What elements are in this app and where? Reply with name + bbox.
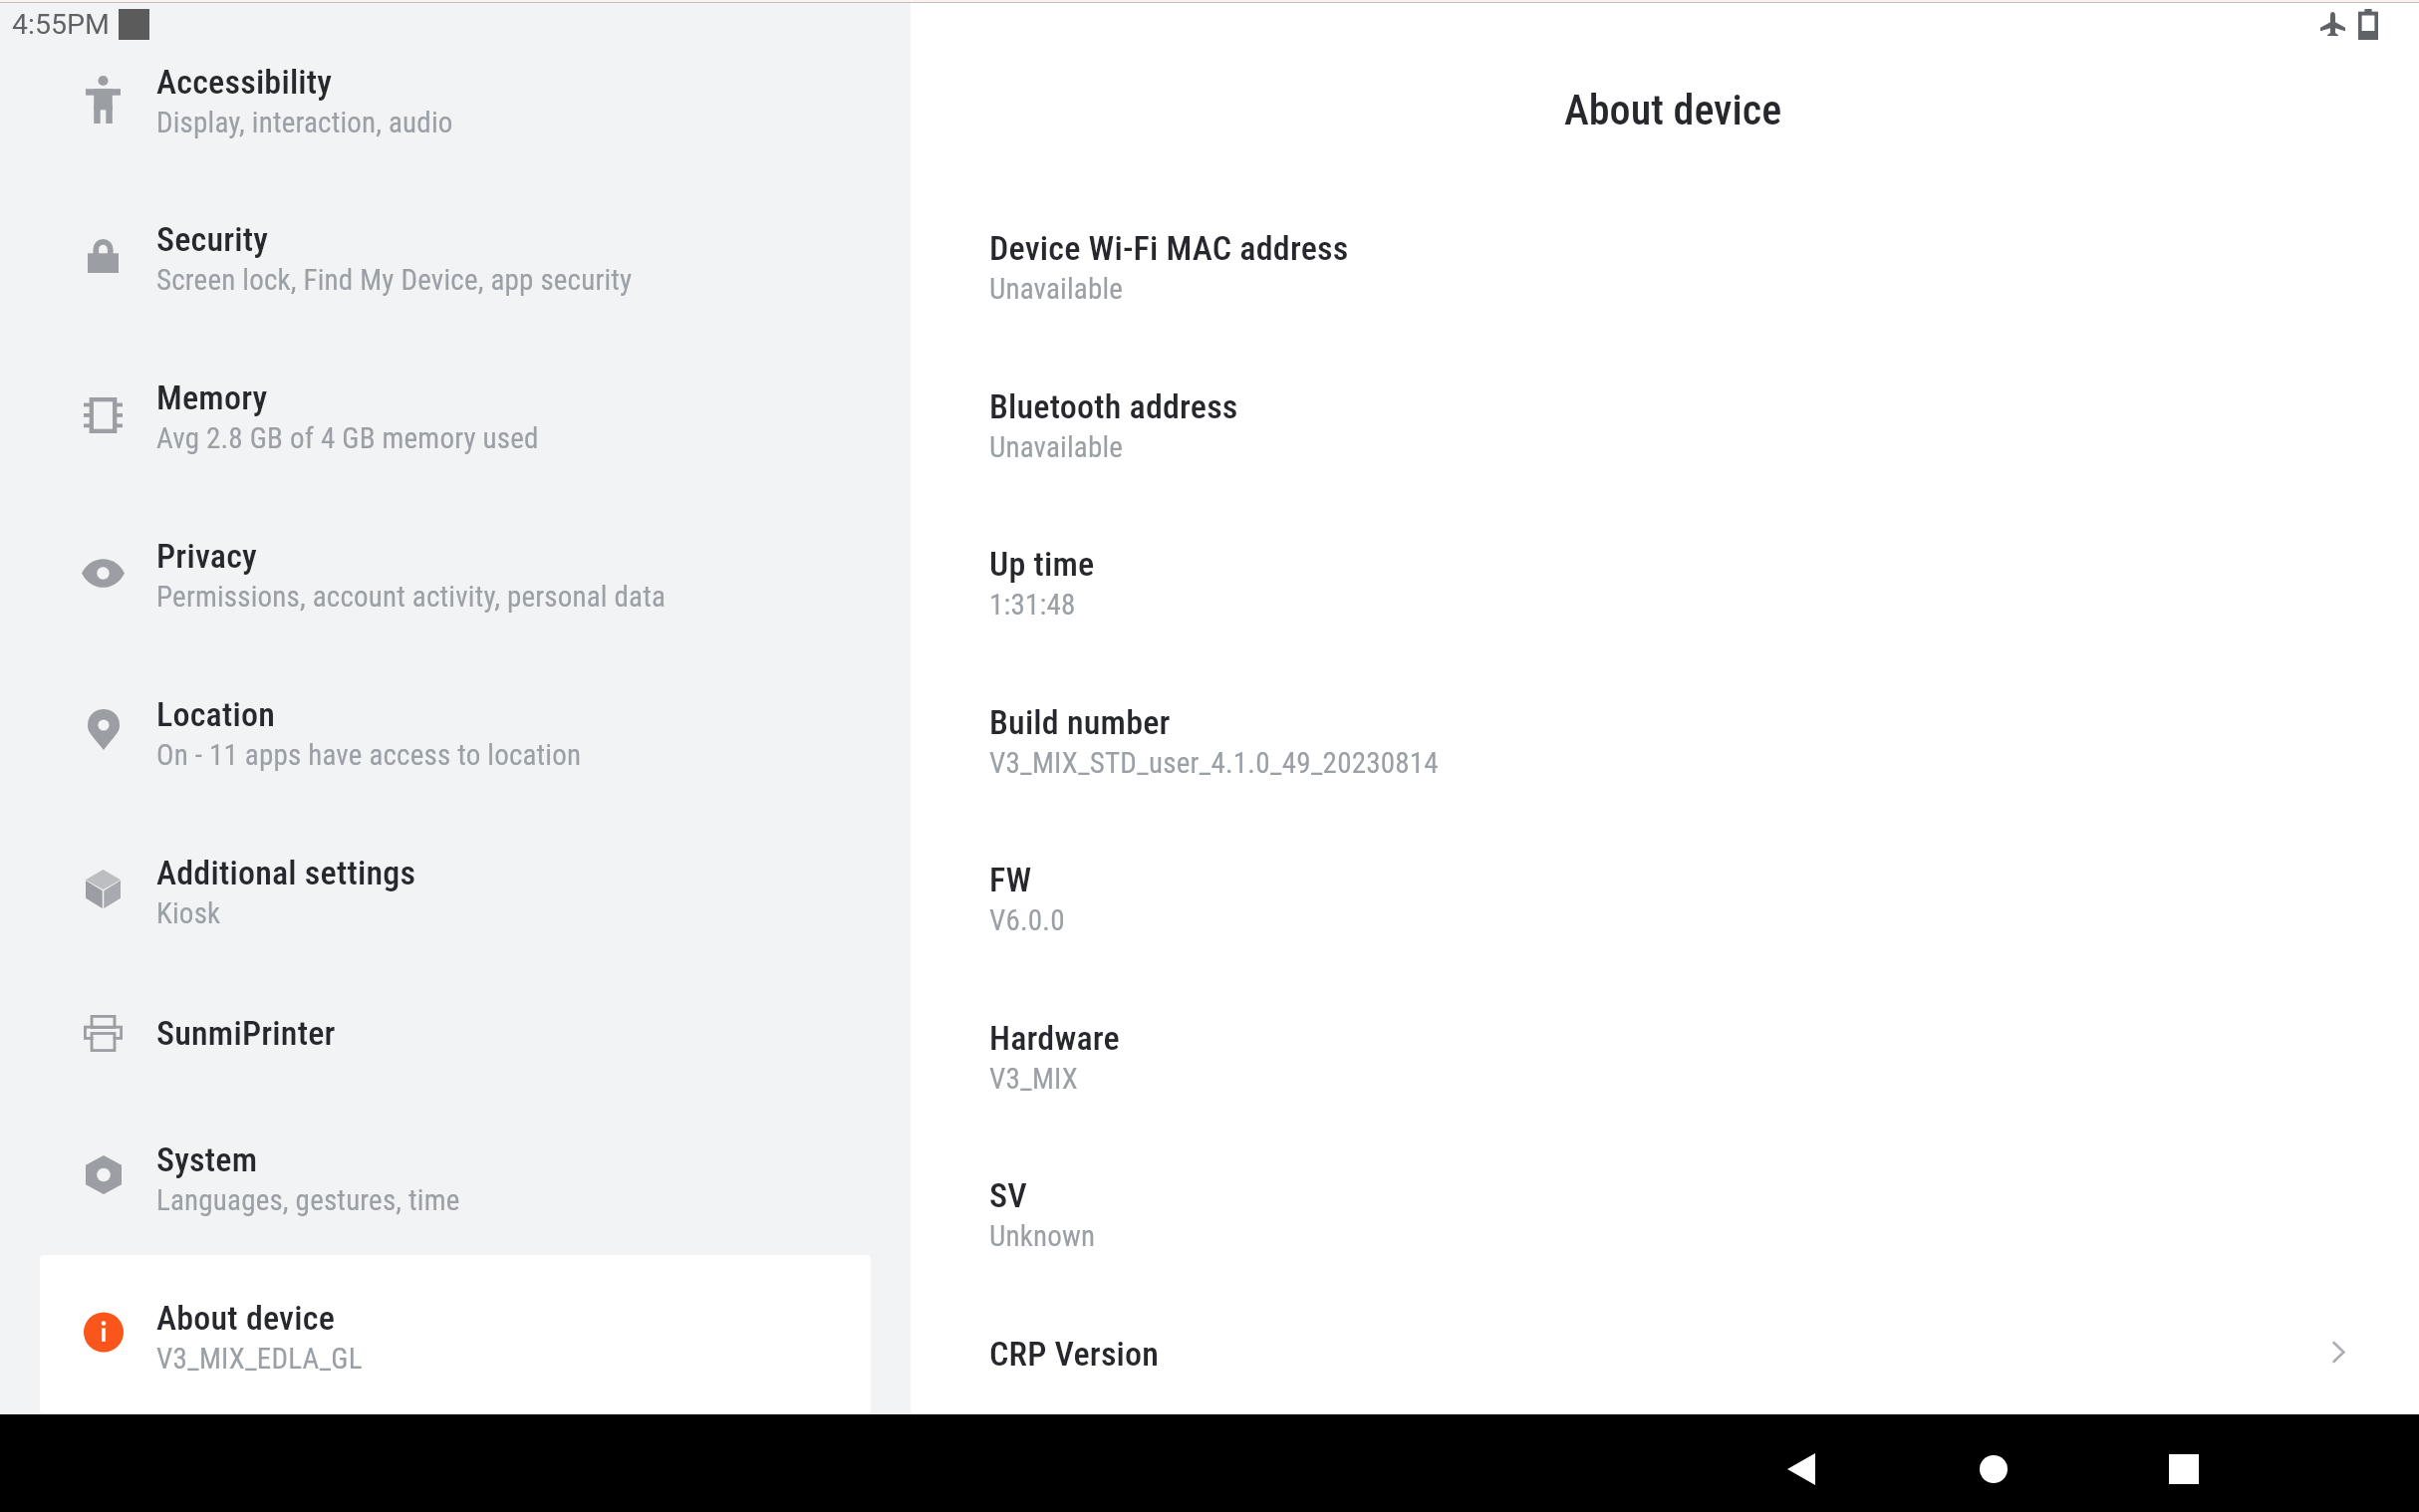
staticText: Security xyxy=(156,219,269,259)
button[interactable]: Recents xyxy=(2154,1439,2214,1499)
staticText: Unavailable xyxy=(989,430,1124,464)
button[interactable]: About device xyxy=(40,1255,871,1414)
button[interactable]: FW xyxy=(911,820,2419,977)
button[interactable]: Hardware xyxy=(911,977,2419,1135)
button[interactable]: Additional settings xyxy=(40,812,871,968)
button[interactable]: Location xyxy=(40,653,871,812)
staticText: Build number xyxy=(989,702,1171,742)
staticText: Additional settings xyxy=(156,853,416,892)
button[interactable]: Accessibility xyxy=(40,21,871,179)
button[interactable]: Bluetooth address xyxy=(911,346,2419,504)
staticText: 4:55PM xyxy=(12,8,110,41)
button[interactable]: Device Wi-Fi MAC address xyxy=(911,187,2419,346)
staticText: Bluetooth address xyxy=(989,386,1238,426)
button[interactable]: Up time xyxy=(911,504,2419,661)
staticText: Hardware xyxy=(989,1018,1120,1058)
button[interactable]: CRP Version xyxy=(911,1293,2419,1414)
staticText: CRP Version xyxy=(989,1334,1160,1374)
staticText: 1:31:48 xyxy=(989,588,1076,622)
staticText: Display, interaction, audio xyxy=(156,106,453,139)
button[interactable]: Privacy xyxy=(40,495,871,653)
staticText: FW xyxy=(989,860,1032,899)
button[interactable]: System xyxy=(40,1097,871,1255)
staticText: SV xyxy=(989,1175,1027,1215)
staticText: Device Wi-Fi MAC address xyxy=(989,228,1349,268)
staticText: SunmiPrinter xyxy=(156,1013,336,1053)
button[interactable]: Back xyxy=(1771,1439,1831,1499)
staticText: About device xyxy=(156,1298,336,1338)
button[interactable]: Security xyxy=(40,179,871,337)
staticText: Unavailable xyxy=(989,272,1124,306)
other: Open CRP Version xyxy=(2314,1328,2362,1376)
staticText: System xyxy=(156,1139,258,1179)
staticText: Permissions, account activity, personal … xyxy=(156,580,667,614)
staticText: Screen lock, Find My Device, app securit… xyxy=(156,263,633,297)
staticText: Kiosk xyxy=(156,896,221,930)
staticText: About device xyxy=(1564,86,1782,134)
button[interactable]: Build number xyxy=(911,661,2419,820)
staticText: V3_MIX xyxy=(989,1062,1078,1096)
button[interactable]: Home xyxy=(1964,1439,2023,1499)
staticText: Location xyxy=(156,694,276,734)
staticText: On - 11 apps have access to location xyxy=(156,738,582,772)
button[interactable]: SV xyxy=(911,1135,2419,1293)
staticText: V6.0.0 xyxy=(989,903,1065,937)
staticText: V3_MIX_STD_user_4.1.0_49_20230814 xyxy=(989,746,1439,780)
staticText: Avg 2.8 GB of 4 GB memory used xyxy=(156,421,539,455)
button[interactable]: SunmiPrinter xyxy=(40,968,871,1097)
staticText: Memory xyxy=(156,378,268,417)
staticText: Privacy xyxy=(156,536,257,576)
staticText: Unknown xyxy=(989,1219,1096,1253)
button[interactable]: Memory xyxy=(40,337,871,495)
staticText: V3_MIX_EDLA_GL xyxy=(156,1342,363,1376)
staticText: Up time xyxy=(989,544,1095,584)
staticText: Languages, gestures, time xyxy=(156,1183,460,1217)
staticText: Accessibility xyxy=(156,62,333,102)
